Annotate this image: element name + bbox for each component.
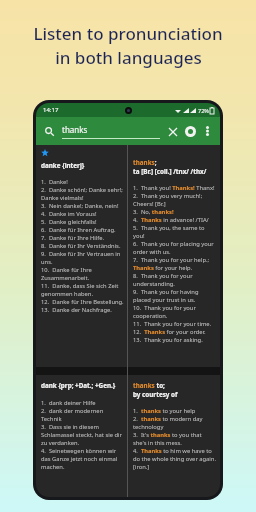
- button[interactable]: thanks;: [128, 145, 220, 367]
- staticText: thanks;: [133, 158, 157, 167]
- staticText: 72%: [198, 107, 209, 114]
- staticText: 1. dank deiner Hilfe 2. dank der moderne…: [41, 399, 124, 471]
- button[interactable]: dank {prp; +Dat.; +Gen.}: [36, 375, 127, 497]
- staticText: danke {interj}: [41, 161, 85, 170]
- staticText: by courtesy of: [133, 390, 178, 399]
- button[interactable]: Favourite: [36, 145, 127, 367]
- button[interactable]: thanks to;: [128, 375, 220, 497]
- button[interactable]: Search: [43, 125, 56, 138]
- staticText: 1. Thank you! Thanks! Thanx! 2. Thank yo…: [133, 184, 216, 344]
- button[interactable]: Swap languages: [184, 125, 197, 138]
- staticText: dank {prp; +Dat.; +Gen.}: [41, 381, 116, 390]
- staticText: thanks to;: [133, 381, 165, 390]
- button[interactable]: Clear search: [166, 125, 179, 138]
- button[interactable]: More options: [201, 125, 213, 137]
- staticText: ta [Br.] [coll.] /tnx/ /thx/: [133, 167, 207, 176]
- staticText: Listen to pronunciation: [33, 22, 223, 45]
- staticText: 14:17: [43, 106, 59, 114]
- staticText: 1. thanks to your help 2. thanks to mode…: [133, 407, 216, 471]
- staticText: in both languages: [55, 46, 202, 69]
- staticText: 1. Danke! 2. Danke schön!; Danke sehr!; …: [41, 178, 124, 314]
- other: Favourite: [41, 149, 49, 157]
- staticText: thanks: [62, 124, 88, 135]
